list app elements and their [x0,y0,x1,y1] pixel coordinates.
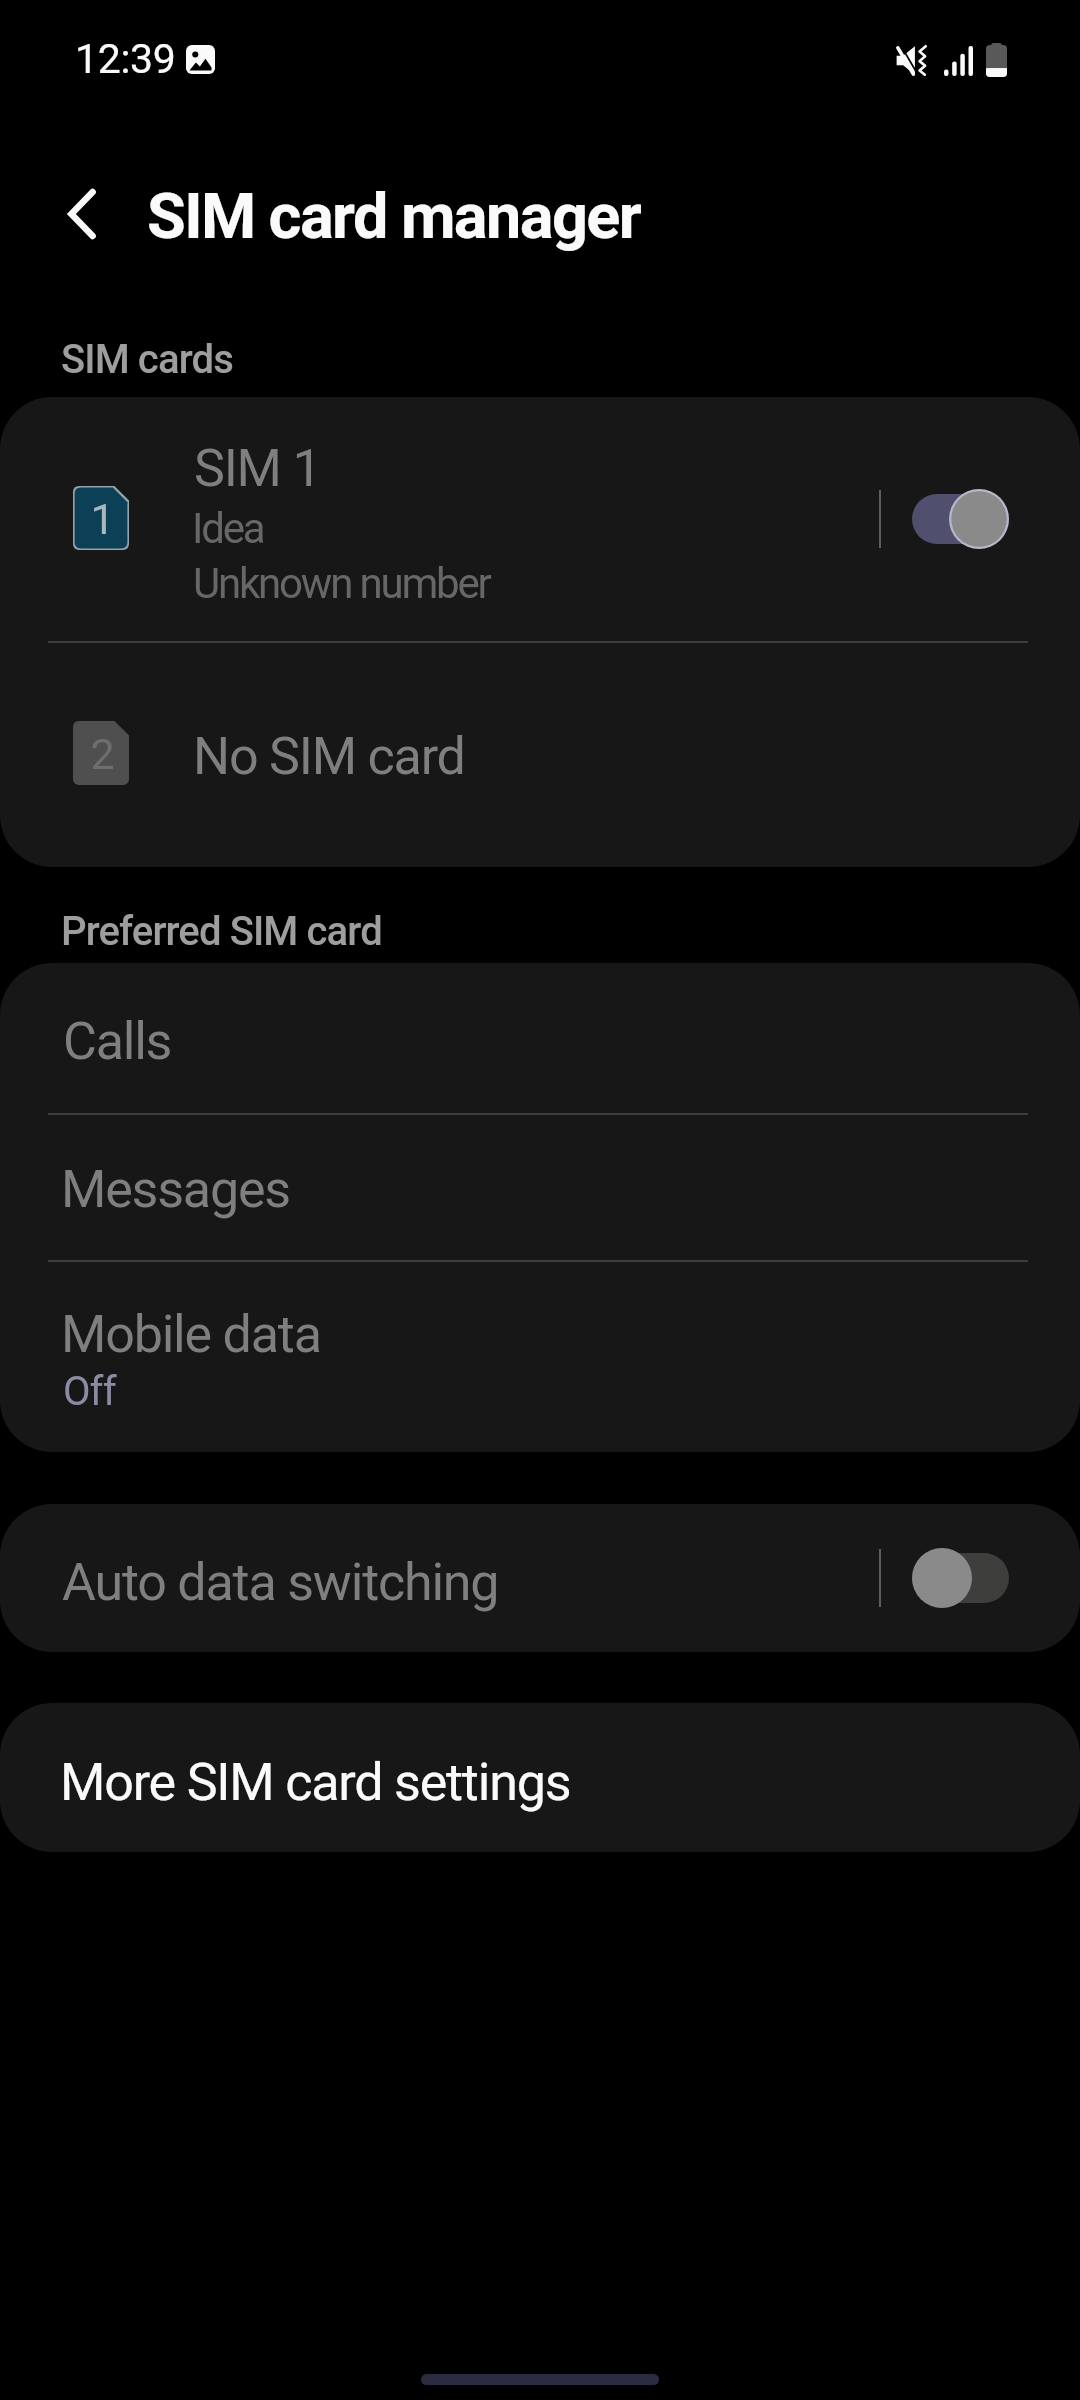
button[interactable]: 2 [0,643,1080,867]
staticText: Calls [63,1011,172,1072]
staticText: Off [63,1368,116,1415]
staticText: Idea [192,504,264,553]
staticText: 1 [90,494,115,544]
staticText: 2 [90,729,115,779]
staticText: Preferred SIM card [61,908,382,955]
button[interactable]: Auto data switching [0,1504,1080,1652]
staticText: SIM 1 [194,438,321,499]
staticText: Auto data switching [62,1552,499,1613]
staticText: Unknown number [193,559,490,608]
button[interactable]: More SIM card settings [0,1703,1080,1852]
button[interactable]: 1 [0,397,1080,641]
staticText: 12:39 [75,35,176,83]
button[interactable]: Turn off [912,489,1013,549]
button[interactable]: Messages [0,1115,1080,1261]
staticText: SIM cards [61,336,233,383]
button[interactable]: Calls [0,963,1080,1114]
staticText: SIM card manager [147,180,641,254]
staticText: More SIM card settings [60,1752,571,1813]
button[interactable]: Navigate up [26,158,138,270]
button[interactable]: Turn on [912,1548,1013,1608]
staticText: Mobile data [61,1304,321,1365]
button[interactable]: Mobile data [0,1262,1080,1452]
staticText: Messages [61,1159,290,1220]
staticText: No SIM card [193,726,465,787]
